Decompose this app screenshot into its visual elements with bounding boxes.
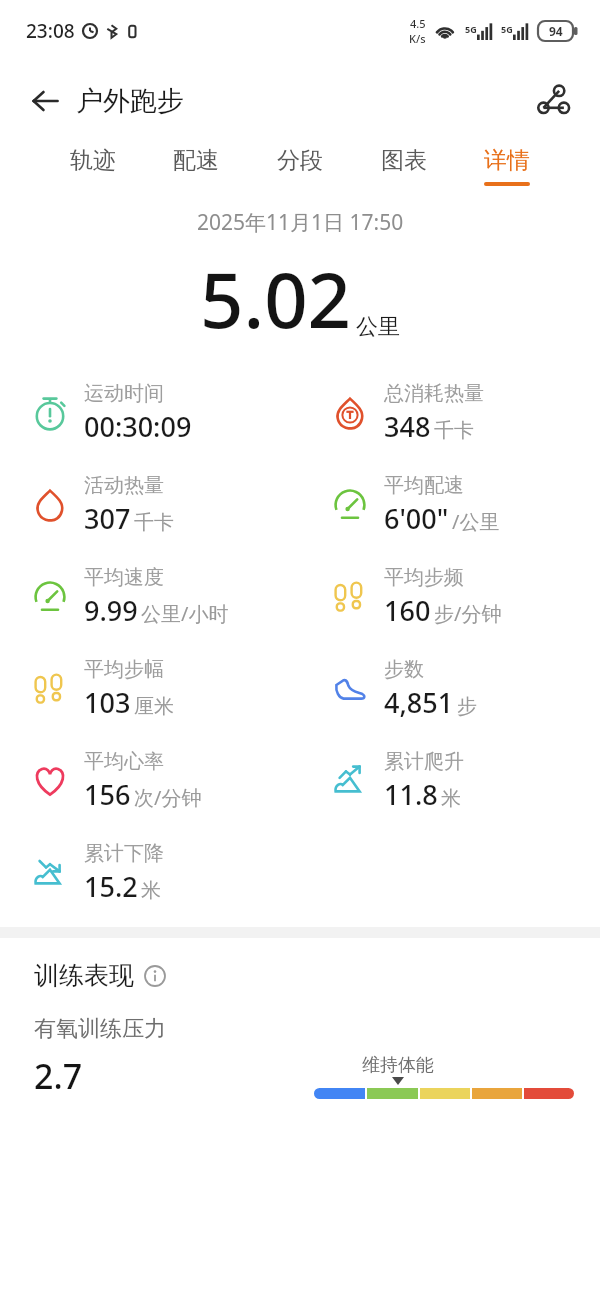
staticText: 轨迹	[70, 146, 116, 175]
button[interactable]: 平均步幅	[0, 653, 300, 725]
staticText: 5G	[501, 23, 513, 35]
staticText: 103	[84, 684, 131, 721]
staticText: 4,851	[384, 684, 454, 721]
staticText: 配速	[173, 146, 219, 175]
button[interactable]: 累计下降	[0, 837, 300, 909]
staticText: 11.8	[384, 776, 438, 813]
staticText: 348	[384, 408, 431, 445]
button[interactable]: 配速	[165, 140, 227, 192]
staticText: 运动时间	[84, 381, 164, 406]
button[interactable]: 平均配速	[300, 469, 600, 541]
staticText: /公里	[452, 508, 500, 535]
staticText: 分段	[277, 146, 323, 175]
button[interactable]: 详情	[476, 140, 538, 192]
staticText: 米	[141, 878, 161, 903]
button[interactable]: Back	[20, 76, 70, 126]
staticText: 次/分钟	[134, 784, 202, 811]
staticText: 平均步频	[384, 565, 464, 590]
staticText: 活动热量	[84, 473, 164, 498]
button[interactable]: Share	[524, 72, 582, 130]
staticText: 2025年11月1日 17:50	[197, 208, 404, 237]
staticText: 总消耗热量	[384, 381, 484, 406]
staticText: 厘米	[134, 694, 174, 719]
staticText: 步	[457, 694, 477, 719]
staticText: 步/分钟	[434, 600, 502, 627]
staticText: 户外跑步	[76, 84, 184, 118]
staticText: 公里	[356, 313, 400, 341]
staticText: 千卡	[434, 418, 474, 443]
staticText: 平均配速	[384, 473, 464, 498]
staticText: 6'00"	[384, 500, 449, 537]
staticText: 160	[384, 592, 431, 629]
button[interactable]: 平均步频	[300, 561, 600, 633]
staticText: 23:08	[26, 18, 75, 44]
staticText: 详情	[484, 146, 530, 175]
staticText: 平均步幅	[84, 657, 164, 682]
staticText: 千卡	[134, 510, 174, 535]
staticText: 4.5	[410, 16, 426, 31]
button[interactable]: 运动时间	[0, 377, 300, 449]
staticText: 有氧训练压力	[34, 1015, 166, 1043]
staticText: 94	[549, 23, 563, 39]
staticText: 步数	[384, 657, 424, 682]
staticText: K/s	[409, 31, 426, 46]
staticText: 15.2	[84, 868, 138, 905]
button[interactable]: 图表	[373, 140, 435, 192]
staticText: 156	[84, 776, 131, 813]
staticText: 9.99	[84, 592, 138, 629]
button[interactable]: 总消耗热量	[300, 377, 600, 449]
staticText: 平均心率	[84, 749, 164, 774]
button[interactable]: 累计爬升	[300, 745, 600, 817]
staticText: 平均速度	[84, 565, 164, 590]
staticText: 累计爬升	[384, 749, 464, 774]
button[interactable]: 活动热量	[0, 469, 300, 541]
button[interactable]: 训练表现	[34, 960, 166, 991]
staticText: 米	[441, 786, 461, 811]
staticText: 5G	[465, 23, 477, 35]
staticText: 公里/小时	[141, 600, 229, 627]
button[interactable]: 轨迹	[62, 140, 124, 192]
button[interactable]: 平均速度	[0, 561, 300, 633]
button[interactable]: 分段	[269, 140, 331, 192]
staticText: 307	[84, 500, 131, 537]
staticText: 训练表现	[34, 960, 134, 991]
staticText: 累计下降	[84, 841, 164, 866]
staticText: 5.02	[200, 247, 352, 351]
button[interactable]: 平均心率	[0, 745, 300, 817]
staticText: 2.7	[34, 1053, 83, 1099]
staticText: 图表	[381, 146, 427, 175]
staticText: 维持体能	[362, 1054, 434, 1077]
button[interactable]: 步数	[300, 653, 600, 725]
staticText: 00:30:09	[84, 408, 192, 445]
